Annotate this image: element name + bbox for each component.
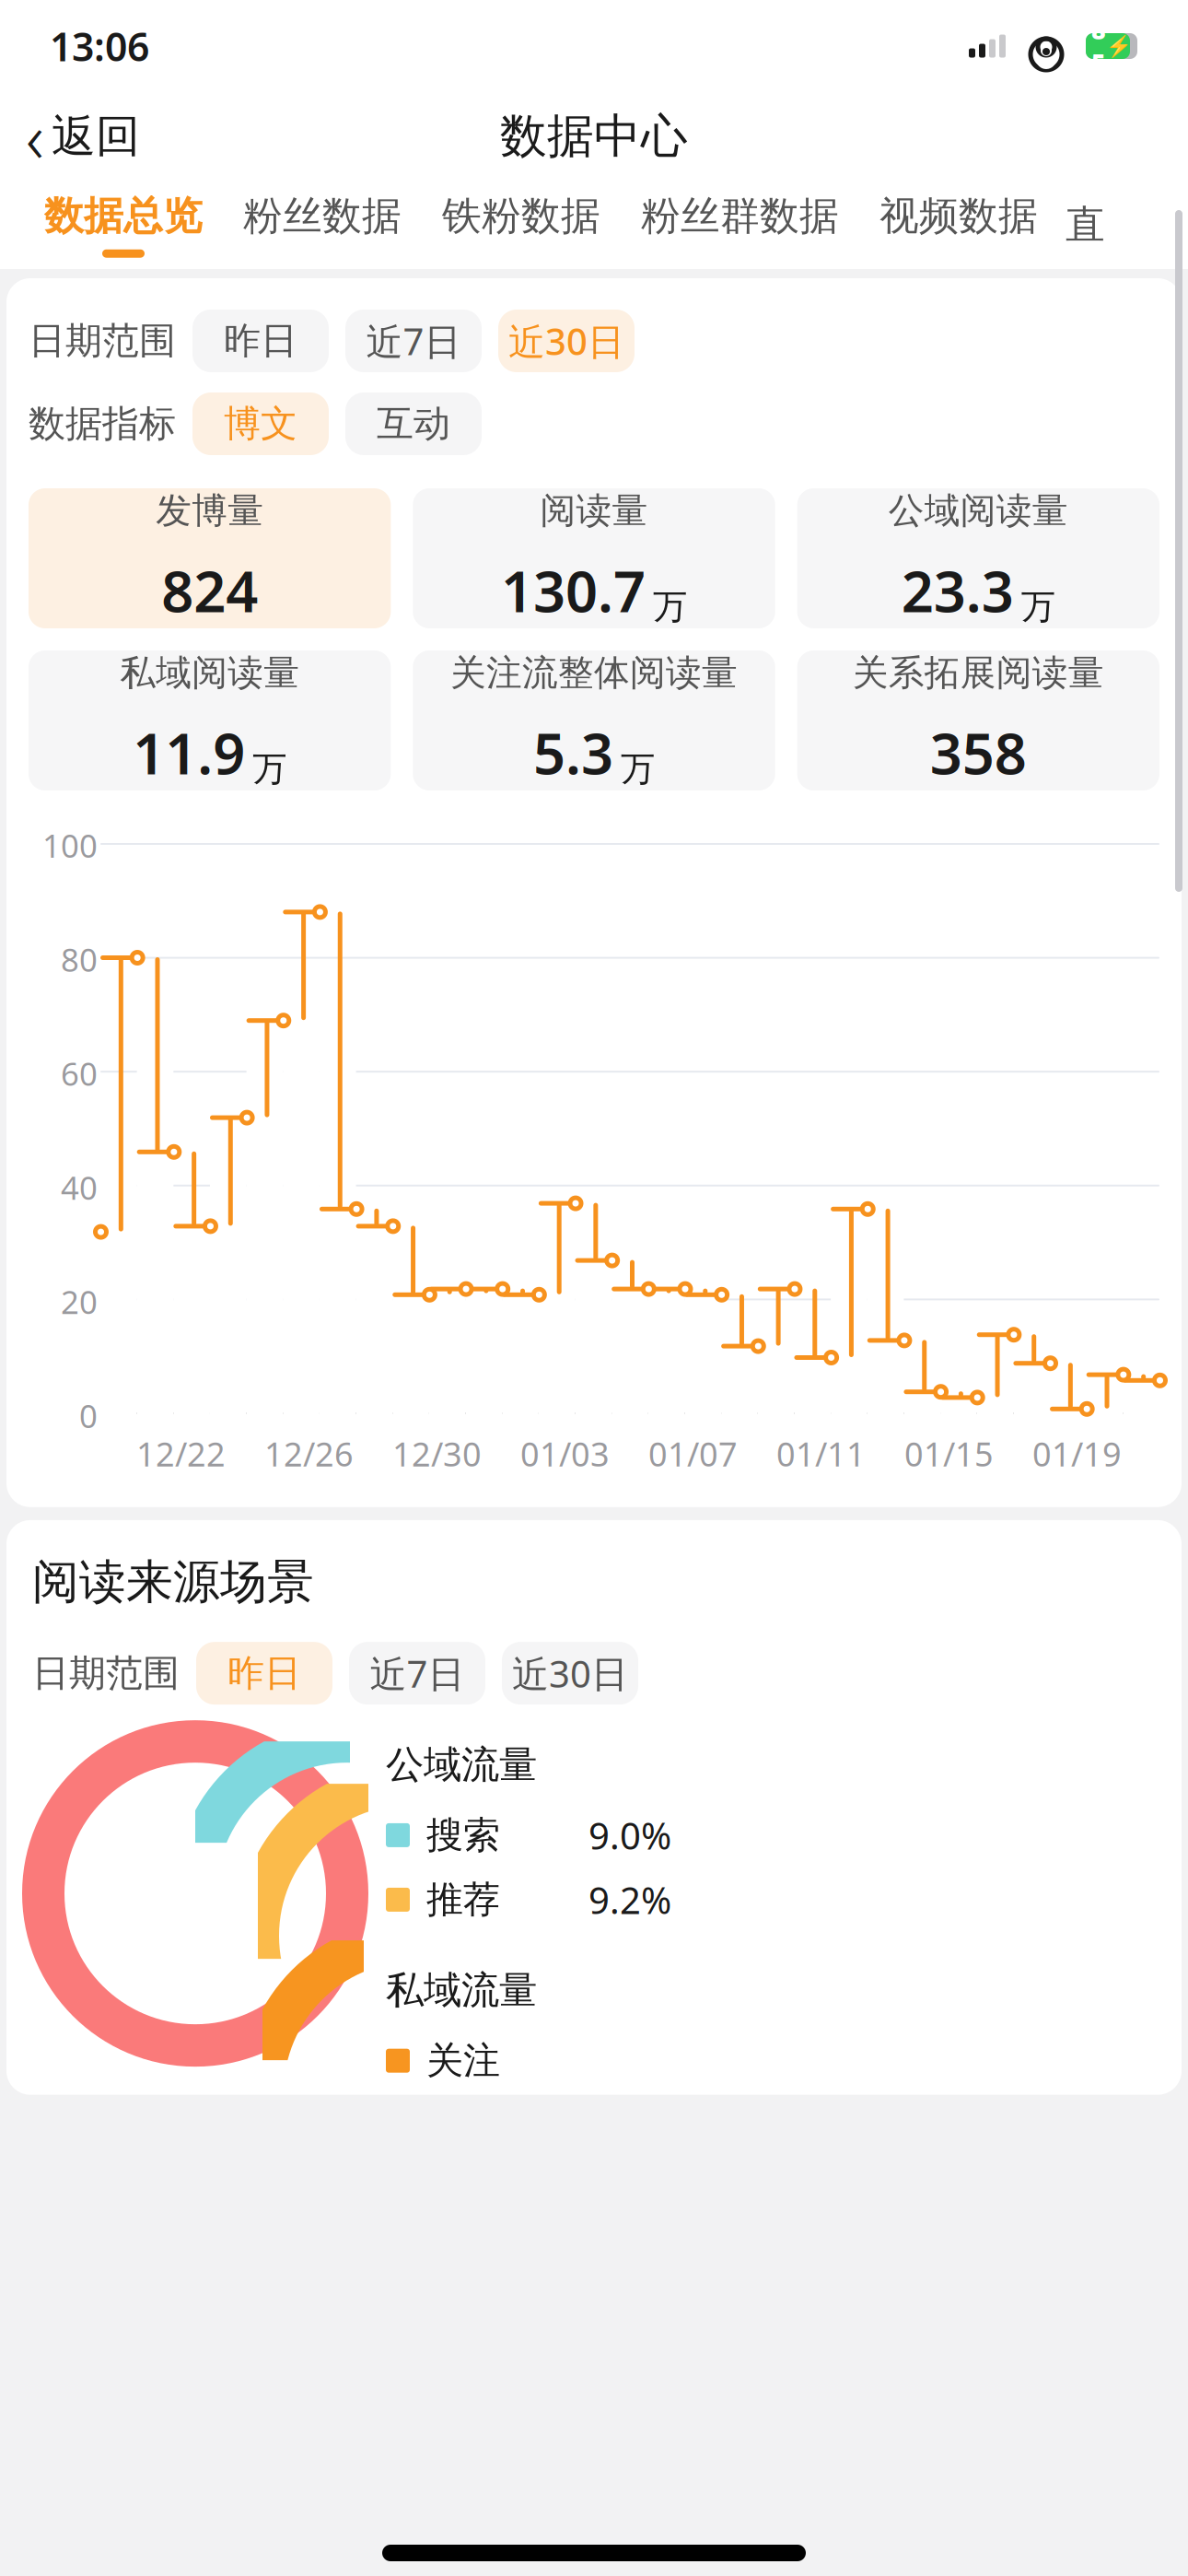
staticText: 9.0%: [588, 1811, 671, 1860]
staticText: 万: [653, 586, 687, 628]
staticText: 0: [79, 1394, 98, 1437]
button[interactable]: 视频数据: [859, 182, 1058, 267]
staticText: 01/15: [904, 1432, 994, 1476]
button[interactable]: 私域阅读量: [29, 650, 391, 790]
button[interactable]: 铁粉数据: [422, 182, 621, 267]
staticText: 阅读来源场景: [32, 1553, 314, 1611]
staticText: 358: [930, 715, 1027, 790]
staticText: 关注: [426, 2038, 500, 2083]
button[interactable]: 昨日: [192, 310, 329, 372]
button[interactable]: 粉丝群数据: [621, 182, 859, 267]
button[interactable]: 关系拓展阅读量: [797, 650, 1159, 790]
staticText: 01/03: [520, 1432, 610, 1476]
staticText: 关系拓展阅读量: [853, 651, 1104, 695]
button[interactable]: 阅读量: [413, 488, 775, 628]
button[interactable]: 近7日: [349, 1642, 485, 1705]
staticText: 万: [621, 748, 655, 790]
button[interactable]: 近30日: [502, 1642, 638, 1705]
staticText: ‹: [26, 91, 44, 182]
staticText: 公域流量: [386, 1741, 537, 1788]
button[interactable]: 近30日: [498, 310, 635, 372]
staticText: 近7日: [370, 1649, 465, 1698]
staticText: 私域阅读量: [120, 651, 299, 695]
staticText: 近30日: [512, 1649, 628, 1698]
staticText: 数据指标: [29, 401, 176, 446]
staticText: 日期范围: [32, 1651, 180, 1696]
staticText: 返回: [52, 109, 140, 164]
button[interactable]: 互动: [345, 392, 482, 455]
staticText: 阅读量: [540, 489, 648, 533]
staticText: 数据中心: [500, 108, 688, 165]
staticText: 昨日: [227, 1651, 301, 1696]
staticText: 9.2%: [588, 1875, 671, 1924]
button[interactable]: 博文: [192, 392, 329, 455]
staticText: 视频数据: [879, 192, 1038, 240]
staticText: 万: [253, 748, 287, 790]
button[interactable]: 直: [1058, 182, 1112, 267]
button[interactable]: 公域阅读量: [797, 488, 1159, 628]
staticText: 130.7: [501, 553, 646, 628]
staticText: 推荐: [426, 1877, 500, 1922]
staticText: 数据总览: [44, 192, 203, 240]
button[interactable]: ‹: [0, 96, 166, 177]
staticText: 近30日: [508, 316, 624, 365]
staticText: 20: [61, 1280, 98, 1323]
staticText: 01/11: [776, 1432, 866, 1476]
staticText: 13:06: [50, 20, 149, 72]
staticText: 发博量: [156, 489, 264, 533]
staticText: 近7日: [366, 316, 461, 365]
staticText: 粉丝群数据: [641, 192, 839, 240]
staticText: 公域阅读量: [889, 489, 1068, 533]
staticText: 80: [61, 938, 98, 981]
staticText: 粉丝数据: [243, 192, 402, 240]
staticText: ⚡: [1106, 34, 1132, 58]
staticText: 关注流整体阅读量: [450, 651, 738, 695]
staticText: 85: [1091, 13, 1106, 79]
staticText: 搜索: [426, 1813, 500, 1858]
staticText: 互动: [377, 401, 450, 446]
staticText: 日期范围: [29, 318, 176, 363]
button[interactable]: 数据总览: [24, 182, 223, 267]
button[interactable]: 昨日: [196, 1642, 332, 1705]
staticText: 12/22: [136, 1432, 226, 1476]
staticText: 博文: [224, 401, 297, 446]
staticText: 铁粉数据: [442, 192, 600, 240]
staticText: 万: [1021, 586, 1055, 628]
staticText: 12/30: [392, 1432, 482, 1476]
staticText: 昨日: [224, 318, 297, 363]
staticText: 824: [161, 553, 258, 628]
staticText: 01/19: [1032, 1432, 1122, 1476]
staticText: 直: [1066, 201, 1105, 249]
staticText: 100: [42, 824, 98, 866]
staticText: 40: [61, 1166, 98, 1209]
staticText: 60: [61, 1052, 98, 1095]
button[interactable]: 近7日: [345, 310, 482, 372]
button[interactable]: 关注流整体阅读量: [413, 650, 775, 790]
staticText: 01/07: [648, 1432, 738, 1476]
staticText: 11.9: [133, 715, 245, 790]
staticText: 5.3: [533, 715, 613, 790]
button[interactable]: 粉丝数据: [223, 182, 422, 267]
staticText: 12/26: [264, 1432, 354, 1476]
staticText: 私域流量: [386, 1967, 537, 2014]
button[interactable]: 发博量: [29, 488, 391, 628]
staticText: 23.3: [901, 553, 1014, 628]
